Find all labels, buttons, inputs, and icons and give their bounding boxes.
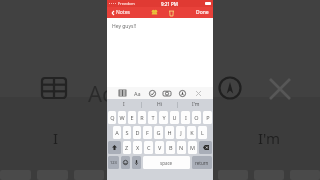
button[interactable]: W <box>118 111 126 124</box>
staticText: E <box>130 114 134 121</box>
staticText: G <box>156 129 161 136</box>
button[interactable]: H <box>165 126 174 139</box>
staticText: M <box>190 144 195 151</box>
staticText: Aa <box>134 90 141 97</box>
button[interactable]: J <box>176 126 185 139</box>
staticText: S <box>125 129 129 136</box>
button[interactable]: Insert table <box>116 87 128 99</box>
button[interactable]: Emoji <box>121 156 130 169</box>
staticText: X <box>136 144 140 151</box>
button[interactable]: F <box>143 126 152 139</box>
button[interactable]: Z <box>123 141 131 154</box>
button[interactable]: I'm <box>178 99 213 110</box>
button[interactable]: X <box>133 141 142 154</box>
button[interactable]: Backspace <box>199 141 212 154</box>
staticText: Done <box>196 9 209 16</box>
staticText: C <box>147 144 151 151</box>
button[interactable]: G <box>154 126 163 139</box>
button[interactable]: Y <box>159 111 168 124</box>
button[interactable]: return <box>192 156 212 169</box>
staticText: R <box>140 114 144 121</box>
button[interactable]: Dictation <box>132 156 141 169</box>
button[interactable]: Checklist <box>146 87 158 99</box>
button[interactable]: C <box>144 141 153 154</box>
button[interactable]: Shift <box>108 141 121 154</box>
staticText: return <box>195 160 209 166</box>
staticText: U <box>172 114 177 121</box>
staticText: O <box>194 114 199 121</box>
staticText: I <box>53 128 59 148</box>
staticText: D <box>135 129 140 136</box>
staticText: H <box>167 129 172 136</box>
button[interactable]: K <box>187 126 196 139</box>
staticText: Z <box>125 144 129 151</box>
button[interactable]: A <box>113 126 121 139</box>
button[interactable]: Markup <box>176 87 188 99</box>
staticText: W <box>119 114 125 121</box>
button[interactable]: N <box>177 141 186 154</box>
button[interactable]: I <box>181 111 190 124</box>
button[interactable]: V <box>155 141 164 154</box>
staticText: space <box>160 160 173 166</box>
staticText: F <box>146 129 149 136</box>
staticText: P <box>206 114 210 121</box>
button[interactable]: E <box>128 111 136 124</box>
staticText: 9:21 PM <box>161 1 178 7</box>
staticText: Hey guys!! <box>112 23 137 30</box>
staticText: Ac <box>88 78 113 108</box>
button[interactable]: B <box>166 141 175 154</box>
button[interactable]: P <box>203 111 212 124</box>
staticText: T <box>151 114 155 121</box>
staticText: A <box>115 129 119 136</box>
staticText: Notes <box>116 9 130 16</box>
staticText: V <box>158 144 162 151</box>
staticText: I'm <box>258 128 281 148</box>
button[interactable]: Notes <box>110 9 131 16</box>
button[interactable]: Hi <box>142 99 177 110</box>
button[interactable]: S <box>123 126 131 139</box>
staticText: Hi <box>157 101 162 108</box>
button[interactable]: M <box>188 141 197 154</box>
button[interactable]: Delete note <box>167 8 176 17</box>
button[interactable]: T <box>148 111 157 124</box>
button[interactable]: Q <box>108 111 116 124</box>
button[interactable]: L <box>198 126 207 139</box>
staticText: K <box>190 129 194 136</box>
staticText: 123 <box>110 160 117 165</box>
staticText: B <box>169 144 173 151</box>
button[interactable]: Share note <box>150 8 159 17</box>
button[interactable]: 123 <box>108 156 119 169</box>
button[interactable]: U <box>170 111 179 124</box>
button[interactable]: Text formatting <box>131 87 143 99</box>
button[interactable]: D <box>133 126 141 139</box>
staticText: J <box>180 129 182 136</box>
button[interactable]: I <box>107 99 141 110</box>
staticText: Freedom <box>118 1 135 6</box>
button[interactable]: Done <box>195 9 210 16</box>
staticText: I'm <box>192 101 200 108</box>
staticText: I <box>123 101 125 108</box>
button[interactable]: Hey guys!! <box>107 18 213 87</box>
button[interactable]: O <box>192 111 201 124</box>
staticText: L <box>201 129 204 136</box>
staticText: Y <box>162 114 166 121</box>
staticText: N <box>179 144 184 151</box>
button[interactable]: Camera <box>161 87 173 99</box>
staticText: Q <box>110 114 115 121</box>
button[interactable]: R <box>138 111 146 124</box>
button[interactable]: Close toolbar <box>192 87 204 99</box>
button[interactable]: space <box>143 156 190 169</box>
staticText: I <box>185 114 187 121</box>
